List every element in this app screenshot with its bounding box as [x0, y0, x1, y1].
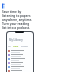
button[interactable]: Saved [21, 44, 28, 47]
staticText: All [8, 44, 11, 47]
staticText: Save time by listening to papers anywher… [2, 10, 33, 30]
button[interactable] [7, 49, 33, 53]
button[interactable] [7, 61, 33, 65]
button[interactable] [7, 65, 33, 69]
button[interactable]: New [13, 44, 19, 47]
staticText: My Library [9, 38, 23, 42]
staticText: Saved [21, 44, 28, 47]
button[interactable] [7, 69, 33, 72]
button[interactable] [7, 53, 33, 57]
staticText: New [13, 44, 19, 47]
button[interactable]: All [8, 44, 11, 47]
button[interactable] [7, 57, 33, 61]
